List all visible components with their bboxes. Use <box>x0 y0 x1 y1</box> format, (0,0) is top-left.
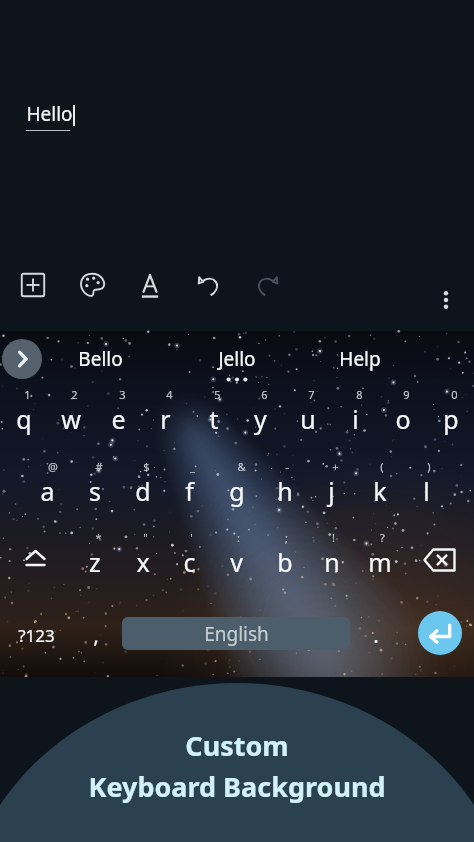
staticText: z <box>89 545 101 579</box>
staticText: - <box>285 459 289 474</box>
button[interactable]: , <box>72 611 120 659</box>
button[interactable]: Redo <box>250 268 284 302</box>
staticText: $ <box>143 459 150 474</box>
button[interactable]: Add <box>16 268 50 302</box>
button[interactable]: Undo <box>192 268 226 302</box>
staticText: 7 <box>308 387 315 402</box>
staticText: 2 <box>71 387 78 402</box>
staticText: y <box>254 402 267 436</box>
staticText: 6 <box>261 387 268 402</box>
staticText: e <box>111 402 126 436</box>
staticText: i <box>352 402 359 436</box>
staticText: u <box>300 402 316 436</box>
staticText: l <box>423 474 430 508</box>
button[interactable]: 6 <box>237 387 284 437</box>
staticText: q <box>16 402 32 436</box>
button[interactable]: Bello <box>48 339 152 379</box>
button[interactable]: Help <box>308 339 412 379</box>
staticText: c <box>183 545 196 579</box>
staticText: 3 <box>119 387 126 402</box>
button[interactable]: 9 <box>379 387 426 437</box>
button[interactable]: More options <box>433 287 459 313</box>
staticText: x <box>136 545 150 579</box>
button[interactable]: ) <box>403 459 450 509</box>
staticText: # <box>95 459 103 474</box>
staticText: : <box>237 530 240 545</box>
button[interactable]: # <box>71 459 118 509</box>
staticText: n <box>324 545 340 579</box>
button[interactable]: 3 <box>95 387 142 437</box>
button[interactable]: ! <box>308 530 355 580</box>
staticText: ?123 <box>18 624 55 647</box>
button[interactable]: ? <box>356 530 403 580</box>
button[interactable]: Enter <box>418 611 462 655</box>
staticText: o <box>395 402 411 436</box>
staticText: + <box>332 459 339 474</box>
staticText: 8 <box>356 387 363 402</box>
button[interactable]: . <box>352 611 400 659</box>
staticText: ? <box>380 530 385 545</box>
button[interactable]: " <box>119 530 166 580</box>
button[interactable]: Backspace <box>403 530 474 580</box>
staticText: m <box>368 545 392 579</box>
staticText: s <box>89 474 101 508</box>
staticText: * <box>95 530 102 545</box>
staticText: @ <box>48 459 58 474</box>
staticText: p <box>443 402 459 436</box>
button[interactable]: - <box>261 459 308 509</box>
button[interactable]: Theme <box>75 268 109 302</box>
button[interactable]: _ <box>166 459 213 509</box>
staticText: a <box>40 474 55 508</box>
staticText: f <box>185 474 194 508</box>
staticText: . <box>373 621 379 650</box>
staticText: j <box>328 474 335 508</box>
button[interactable]: & <box>213 459 260 509</box>
staticText: Keyboard Background <box>88 768 386 805</box>
button[interactable]: $ <box>119 459 166 509</box>
staticText: 1 <box>24 387 31 402</box>
staticText: w <box>61 402 81 436</box>
staticText: ! <box>332 530 335 545</box>
staticText: v <box>230 545 243 579</box>
staticText: ' <box>190 530 193 545</box>
button[interactable]: ; <box>261 530 308 580</box>
button[interactable]: 2 <box>47 387 94 437</box>
button[interactable]: ( <box>356 459 403 509</box>
button[interactable]: : <box>213 530 260 580</box>
staticText: Help <box>339 346 381 372</box>
staticText: & <box>237 459 246 474</box>
staticText: 4 <box>166 387 173 402</box>
button[interactable]: 1 <box>0 387 47 437</box>
staticText: t <box>209 402 219 436</box>
button[interactable]: Shift <box>0 530 71 580</box>
button[interactable]: + <box>308 459 355 509</box>
staticText: , <box>93 621 99 650</box>
staticText: ; <box>285 530 288 545</box>
button[interactable]: English <box>122 617 350 650</box>
button[interactable]: 0 <box>427 387 474 437</box>
button[interactable]: ' <box>166 530 213 580</box>
button[interactable]: ?123 <box>2 611 70 659</box>
button[interactable]: Text style <box>133 268 167 302</box>
staticText: d <box>135 474 151 508</box>
button[interactable]: 8 <box>332 387 379 437</box>
button[interactable]: @ <box>24 459 71 509</box>
staticText: h <box>277 474 293 508</box>
staticText: " <box>143 530 148 545</box>
staticText: 9 <box>403 387 410 402</box>
staticText: Jello <box>218 346 256 372</box>
staticText: ) <box>427 459 431 474</box>
button[interactable]: 5 <box>190 387 237 437</box>
staticText: ( <box>380 459 384 474</box>
staticText: r <box>160 402 171 436</box>
button[interactable]: * <box>71 530 118 580</box>
staticText: 5 <box>214 387 221 402</box>
staticText: 0 <box>451 387 458 402</box>
button[interactable]: Jello <box>185 339 289 379</box>
staticText: k <box>373 474 387 508</box>
button[interactable]: 4 <box>142 387 189 437</box>
staticText: Bello <box>78 346 123 372</box>
button[interactable]: 7 <box>284 387 331 437</box>
staticText: English <box>204 621 269 647</box>
button[interactable]: Expand suggestions <box>2 339 42 379</box>
